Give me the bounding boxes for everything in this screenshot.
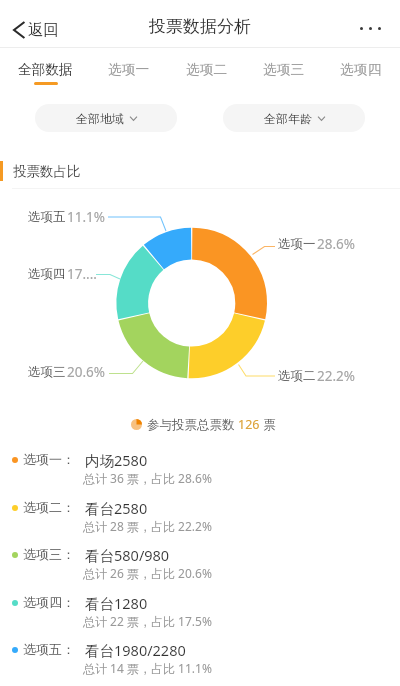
staticText: 总计 22 票，占比 17.5% [83, 613, 212, 629]
staticText: 选项四： [23, 594, 75, 610]
staticText: 选项四 [28, 266, 66, 282]
button[interactable]: 全部数据 [18, 48, 73, 90]
staticText: 票 [260, 416, 276, 433]
button[interactable]: 选项四 [340, 48, 382, 90]
button[interactable]: 全部地域 [35, 104, 177, 132]
staticText: 总计 36 票，占比 28.6% [83, 470, 212, 486]
button[interactable]: 选项二 [186, 48, 228, 90]
button[interactable]: 选项五： [0, 640, 400, 686]
staticText: 内场2580 [85, 450, 148, 470]
staticText: 选项五 [28, 209, 66, 225]
staticText: 全部地域 [76, 111, 124, 126]
button[interactable]: 选项一 [108, 48, 150, 90]
staticText: 选项二： [23, 499, 75, 515]
staticText: 总计 26 票，占比 20.6% [83, 565, 212, 581]
staticText: 选项五： [23, 641, 75, 657]
button[interactable]: 返回 [1, 14, 71, 46]
staticText: 总计 28 票，占比 22.2% [83, 518, 212, 534]
button[interactable]: 更多 [341, 13, 400, 44]
staticText: 22.2% [317, 367, 356, 385]
staticText: 选项三 [28, 364, 66, 380]
button[interactable]: 选项三 [263, 48, 305, 90]
staticText: 20.6% [67, 363, 106, 381]
staticText: 返回 [28, 20, 59, 40]
staticText: 投票数占比 [13, 163, 81, 180]
staticText: 17.... [67, 265, 97, 283]
staticText: 选项三： [23, 546, 75, 562]
staticText: 全部年龄 [264, 111, 312, 126]
staticText: 选项一 [108, 61, 150, 78]
staticText: 看台1280 [85, 593, 148, 613]
button[interactable]: 选项四： [0, 593, 400, 640]
staticText: 选项一 [278, 236, 316, 252]
staticText: 总计 14 票，占比 11.1% [83, 660, 212, 676]
staticText: 28.6% [317, 235, 356, 253]
button[interactable]: 全部年龄 [223, 104, 365, 132]
staticText: 看台2580 [85, 498, 148, 518]
staticText: 看台580/980 [85, 545, 170, 565]
staticText: 选项四 [340, 61, 382, 78]
button[interactable]: 选项二： [0, 498, 400, 545]
staticText: 参与投票总票数 [147, 416, 238, 433]
staticText: 11.1% [67, 208, 106, 226]
staticText: 选项二 [186, 61, 228, 78]
staticText: 选项三 [263, 61, 305, 78]
staticText: 选项二 [278, 368, 316, 384]
staticText: 全部数据 [18, 61, 73, 78]
staticText: 选项一： [23, 451, 75, 467]
button[interactable]: 选项三： [0, 545, 400, 592]
button[interactable]: 选项一： [0, 450, 400, 497]
staticText: 投票数据分析 [149, 16, 251, 37]
staticText: 126 [238, 416, 260, 433]
staticText: 看台1980/2280 [85, 640, 186, 660]
